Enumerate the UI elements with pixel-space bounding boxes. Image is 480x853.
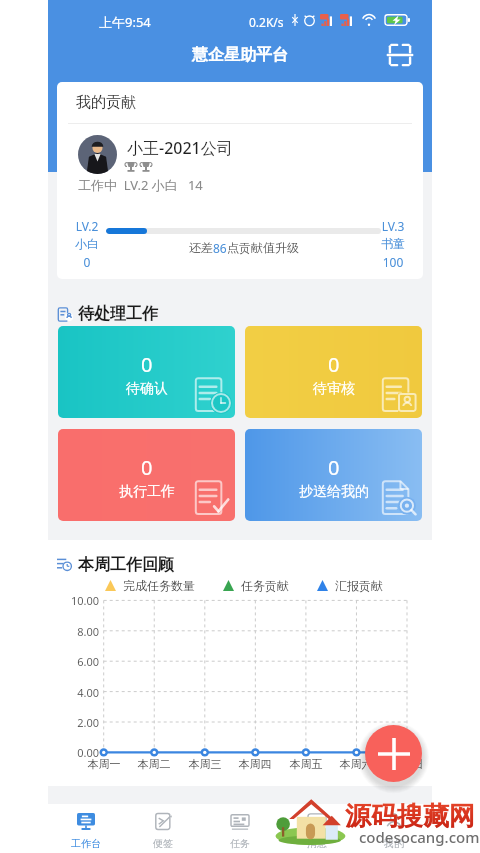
staticText: 抄送给我的 xyxy=(299,483,369,501)
staticText: 待确认 xyxy=(126,380,168,398)
staticText: 本周二 xyxy=(133,757,175,771)
staticText: 我的贡献 xyxy=(76,93,136,112)
staticText: 6.00 xyxy=(59,654,99,669)
staticText: 待处理工作 xyxy=(78,304,158,324)
staticText: 本周日 xyxy=(386,757,428,771)
staticText: 0.00 xyxy=(59,745,99,760)
staticText: 10.00 xyxy=(59,593,99,608)
staticText: 工作台 xyxy=(71,837,101,850)
staticText: 小王-2021公司 xyxy=(127,137,233,159)
staticText: 待审核 xyxy=(313,380,355,398)
staticText: 0 xyxy=(141,351,153,378)
button[interactable]: 0 xyxy=(245,429,422,521)
staticText: 慧企星助平台 xyxy=(192,45,288,65)
staticText: 0.2K/s xyxy=(249,14,284,30)
staticText: 8.00 xyxy=(59,624,99,639)
button[interactable]: 消息 xyxy=(278,804,355,853)
staticText: 小白 xyxy=(64,236,110,251)
staticText: 0 xyxy=(328,454,340,481)
staticText: 工作中 LV.2 小白 14 xyxy=(78,176,203,194)
button[interactable]: 我的 xyxy=(355,804,432,853)
staticText: 汇报贡献 xyxy=(335,578,383,593)
staticText: 100 xyxy=(370,254,416,270)
staticText: 4.00 xyxy=(59,685,99,700)
staticText: 0 xyxy=(328,351,340,378)
staticText: 0 xyxy=(64,254,110,270)
staticText: 完成任务数量 xyxy=(123,578,195,593)
staticText: 本周工作回顾 xyxy=(78,555,174,575)
staticText: 还差 xyxy=(189,240,213,255)
staticText: 本周三 xyxy=(184,757,226,771)
staticText: codesocang.com xyxy=(359,827,480,847)
staticText: 源码搜藏网 xyxy=(345,800,475,833)
staticText: 执行工作 xyxy=(119,483,175,501)
button[interactable]: 0 xyxy=(58,429,235,521)
staticText: 本周六 xyxy=(335,757,377,771)
staticText: 任务 xyxy=(230,837,250,850)
staticText: 本周四 xyxy=(234,757,276,771)
button[interactable]: Add xyxy=(365,725,422,782)
staticText: 86 xyxy=(213,240,227,256)
staticText: 任务贡献 xyxy=(241,578,289,593)
staticText: 消息 xyxy=(307,837,327,850)
staticText: 上午9:54 xyxy=(99,13,151,31)
staticText: LV.3 xyxy=(370,218,416,234)
staticText: LV.2 xyxy=(64,218,110,234)
button[interactable]: 0 xyxy=(58,326,235,418)
button[interactable]: 0 xyxy=(245,326,422,418)
staticText: 本周五 xyxy=(285,757,327,771)
staticText: 点贡献值升级 xyxy=(227,240,299,255)
staticText: 我的 xyxy=(384,837,404,850)
button[interactable]: Scan QR code xyxy=(386,41,414,69)
button[interactable]: 工作台 xyxy=(48,804,124,853)
staticText: 0 xyxy=(141,454,153,481)
staticText: 便签 xyxy=(153,837,173,850)
button[interactable]: 任务 xyxy=(201,804,278,853)
staticText: 书童 xyxy=(370,236,416,251)
button[interactable]: 便签 xyxy=(124,804,201,853)
staticText: 本周一 xyxy=(83,757,125,771)
staticText: 2.00 xyxy=(59,715,99,730)
